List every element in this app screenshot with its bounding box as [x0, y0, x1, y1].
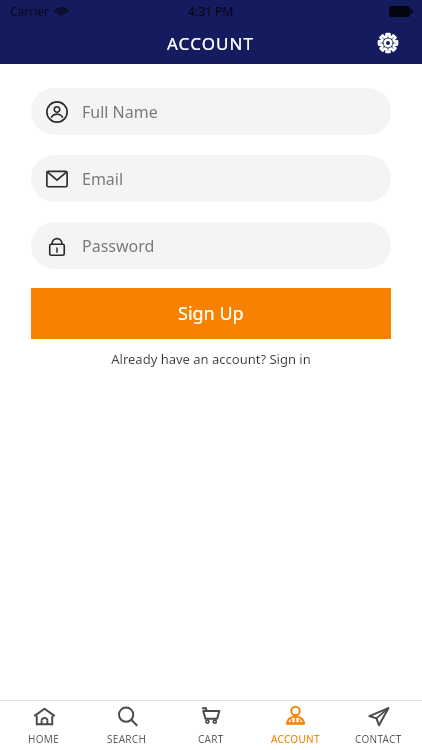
- button[interactable]: Full Name: [31, 88, 391, 135]
- button[interactable]: ACCOUNT: [255, 701, 335, 750]
- button[interactable]: Email: [31, 155, 391, 202]
- staticText: ACCOUNT: [271, 732, 320, 746]
- staticText: Full Name: [82, 101, 158, 123]
- staticText: ACCOUNT: [167, 32, 255, 55]
- staticText: CART: [198, 732, 224, 746]
- staticText: Already have an account? Sign in: [111, 350, 311, 368]
- button[interactable]: Sign Up: [31, 288, 391, 339]
- button[interactable]: SEARCH: [87, 701, 167, 750]
- button[interactable]: HOME: [4, 701, 84, 750]
- staticText: Password: [82, 235, 155, 257]
- button[interactable]: Already have an account? Sign in: [0, 350, 422, 368]
- staticText: CONTACT: [355, 732, 402, 746]
- button[interactable]: CONTACT: [338, 701, 418, 750]
- staticText: Sign Up: [178, 301, 244, 326]
- staticText: Carrier: [10, 3, 50, 19]
- button[interactable]: CART: [171, 701, 251, 750]
- staticText: 4:31 PM: [188, 3, 234, 19]
- staticText: SEARCH: [107, 732, 147, 746]
- button[interactable]: Password: [31, 222, 391, 269]
- button[interactable]: Settings: [371, 26, 405, 60]
- staticText: HOME: [28, 732, 60, 746]
- staticText: Email: [82, 168, 124, 190]
